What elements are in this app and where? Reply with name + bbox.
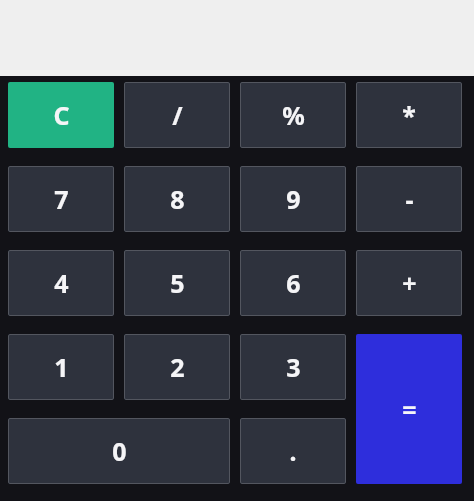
staticText: 7 (54, 182, 69, 216)
staticText: 1 (54, 350, 69, 384)
staticText: 3 (286, 350, 301, 384)
button[interactable]: Eight (124, 166, 230, 232)
button[interactable]: Percent (240, 82, 346, 148)
button[interactable]: Divide (124, 82, 230, 148)
button[interactable]: Five (124, 250, 230, 316)
button[interactable]: Multiply (356, 82, 462, 148)
button[interactable]: Minus (356, 166, 462, 232)
staticText: % (282, 98, 305, 132)
button[interactable]: Zero (8, 418, 230, 484)
button[interactable]: Two (124, 334, 230, 400)
staticText: + (402, 266, 417, 300)
button[interactable]: Six (240, 250, 346, 316)
staticText: * (402, 98, 416, 132)
staticText: / (172, 98, 183, 132)
button[interactable]: Clear (8, 82, 114, 148)
staticText: . (289, 434, 297, 468)
staticText: 4 (54, 266, 69, 300)
staticText: 9 (286, 182, 301, 216)
button[interactable]: Plus (356, 250, 462, 316)
button[interactable]: Nine (240, 166, 346, 232)
button[interactable]: Decimal point (240, 418, 346, 484)
staticText: 6 (286, 266, 301, 300)
button[interactable]: Equals (356, 334, 462, 484)
button[interactable]: Seven (8, 166, 114, 232)
button[interactable]: Four (8, 250, 114, 316)
staticText: = (402, 392, 417, 426)
staticText: 5 (170, 266, 185, 300)
staticText: 2 (170, 350, 185, 384)
button[interactable]: One (8, 334, 114, 400)
staticText: 0 (112, 434, 127, 468)
staticText: - (405, 182, 414, 216)
staticText: C (53, 98, 70, 132)
button[interactable]: Three (240, 334, 346, 400)
staticText: 8 (170, 182, 185, 216)
